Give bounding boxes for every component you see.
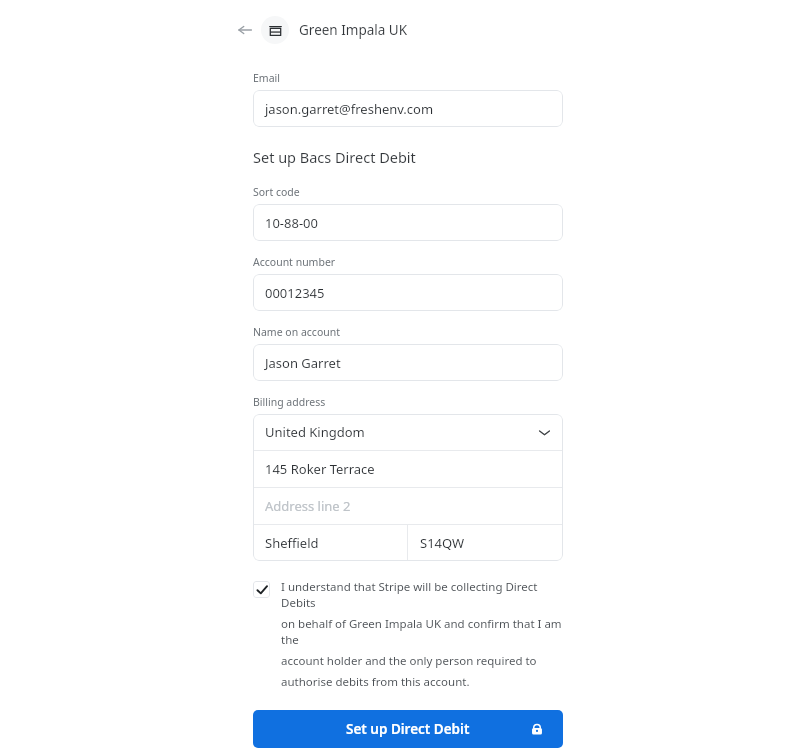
staticText: Billing address [253,395,326,409]
button[interactable]: United Kingdom [253,414,563,450]
staticText: United Kingdom [265,423,365,441]
button[interactable]: S14QW [408,525,563,561]
staticText: 00012345 [265,284,325,302]
staticText: jason.garret@freshenv.com [265,100,434,118]
staticText: Name on account [253,325,341,339]
button[interactable]: I understand that Stripe will be collect… [253,579,563,690]
staticText: 10-88-00 [265,214,318,232]
staticText: S14QW [420,534,465,552]
staticText: Set up Direct Debit [346,720,470,738]
button[interactable]: Back [233,18,257,42]
staticText: Sort code [253,185,300,199]
other: Secure [529,721,545,737]
staticText: authorise debits from this account. [281,674,470,690]
button[interactable]: jason.garret@freshenv.com [253,90,563,127]
staticText: Email [253,71,280,85]
staticText: on behalf of Green Impala UK and confirm… [281,616,563,648]
button[interactable]: Set up Direct Debit [253,710,563,748]
button[interactable]: Jason Garret [253,344,563,381]
staticText: Address line 2 [265,497,351,515]
staticText: Green Impala UK [299,21,408,39]
button[interactable]: 10-88-00 [253,204,563,241]
button[interactable]: Sheffield [253,525,407,561]
staticText: I understand that Stripe will be collect… [281,579,563,611]
staticText: 145 Roker Terrace [265,460,375,478]
button[interactable]: 145 Roker Terrace [253,451,563,487]
staticText: Sheffield [265,534,319,552]
staticText: Account number [253,255,336,269]
staticText: account holder and the only person requi… [281,653,537,669]
button[interactable]: Address line 2 [253,488,563,524]
staticText: Set up Bacs Direct Debit [253,147,416,167]
button[interactable]: 00012345 [253,274,563,311]
staticText: Jason Garret [265,354,341,372]
